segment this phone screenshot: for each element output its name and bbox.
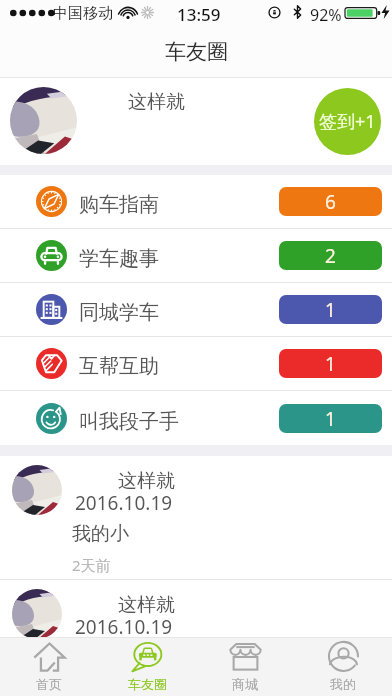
staticText: 这样就 <box>118 469 175 493</box>
staticText: 我的 <box>330 676 356 692</box>
staticText: 签到+1 <box>319 109 376 134</box>
staticText: 6 <box>325 189 336 215</box>
staticText: 92% <box>310 4 342 26</box>
staticText: 中国移动 <box>53 4 113 23</box>
staticText: 互帮互助 <box>79 354 159 379</box>
staticText: 商城 <box>232 676 258 692</box>
staticText: 我的小 <box>72 522 129 546</box>
button[interactable]: 签到+1 <box>314 88 381 155</box>
staticText: 车友圈 <box>128 676 167 692</box>
staticText: 叫我段子手 <box>79 409 179 434</box>
button[interactable]: 首页 <box>0 637 98 696</box>
staticText: 2 <box>325 243 336 269</box>
button[interactable]: 叫我段子手 <box>0 391 392 445</box>
staticText: 2016.10.19 <box>75 614 173 640</box>
staticText: 购车指南 <box>79 192 159 217</box>
staticText: 2016.10.19 <box>75 490 173 516</box>
button[interactable]: 我的 <box>294 637 392 696</box>
button[interactable]: 这样就 <box>0 580 392 637</box>
button[interactable]: 车友圈 <box>98 637 196 696</box>
staticText: 首页 <box>36 676 62 692</box>
button[interactable]: 购车指南 <box>0 175 392 228</box>
staticText: 1 <box>325 297 336 323</box>
staticText: 同城学车 <box>79 300 159 325</box>
staticText: 这样就 <box>118 593 175 617</box>
button[interactable]: 商城 <box>196 637 294 696</box>
staticText: 车友圈 <box>165 39 228 65</box>
staticText: 1 <box>325 406 336 432</box>
staticText: 2天前 <box>72 555 111 575</box>
button[interactable]: 这样就 <box>0 456 392 579</box>
staticText: 学车趣事 <box>79 246 159 271</box>
staticText: 这样就 <box>128 90 185 114</box>
button[interactable]: 互帮互助 <box>0 337 392 390</box>
button[interactable]: 同城学车 <box>0 283 392 336</box>
button[interactable]: 这样就 <box>0 78 392 165</box>
staticText: 13:59 <box>177 3 221 26</box>
staticText: 1 <box>325 351 336 377</box>
button[interactable]: 学车趣事 <box>0 229 392 282</box>
